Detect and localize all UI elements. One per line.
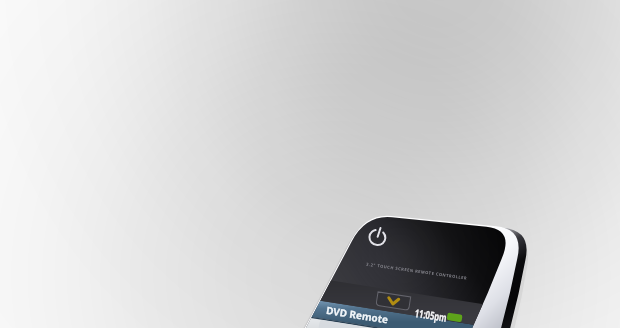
button[interactable]: 3.2 inch touch screen DVD remote control… [0, 0, 620, 328]
